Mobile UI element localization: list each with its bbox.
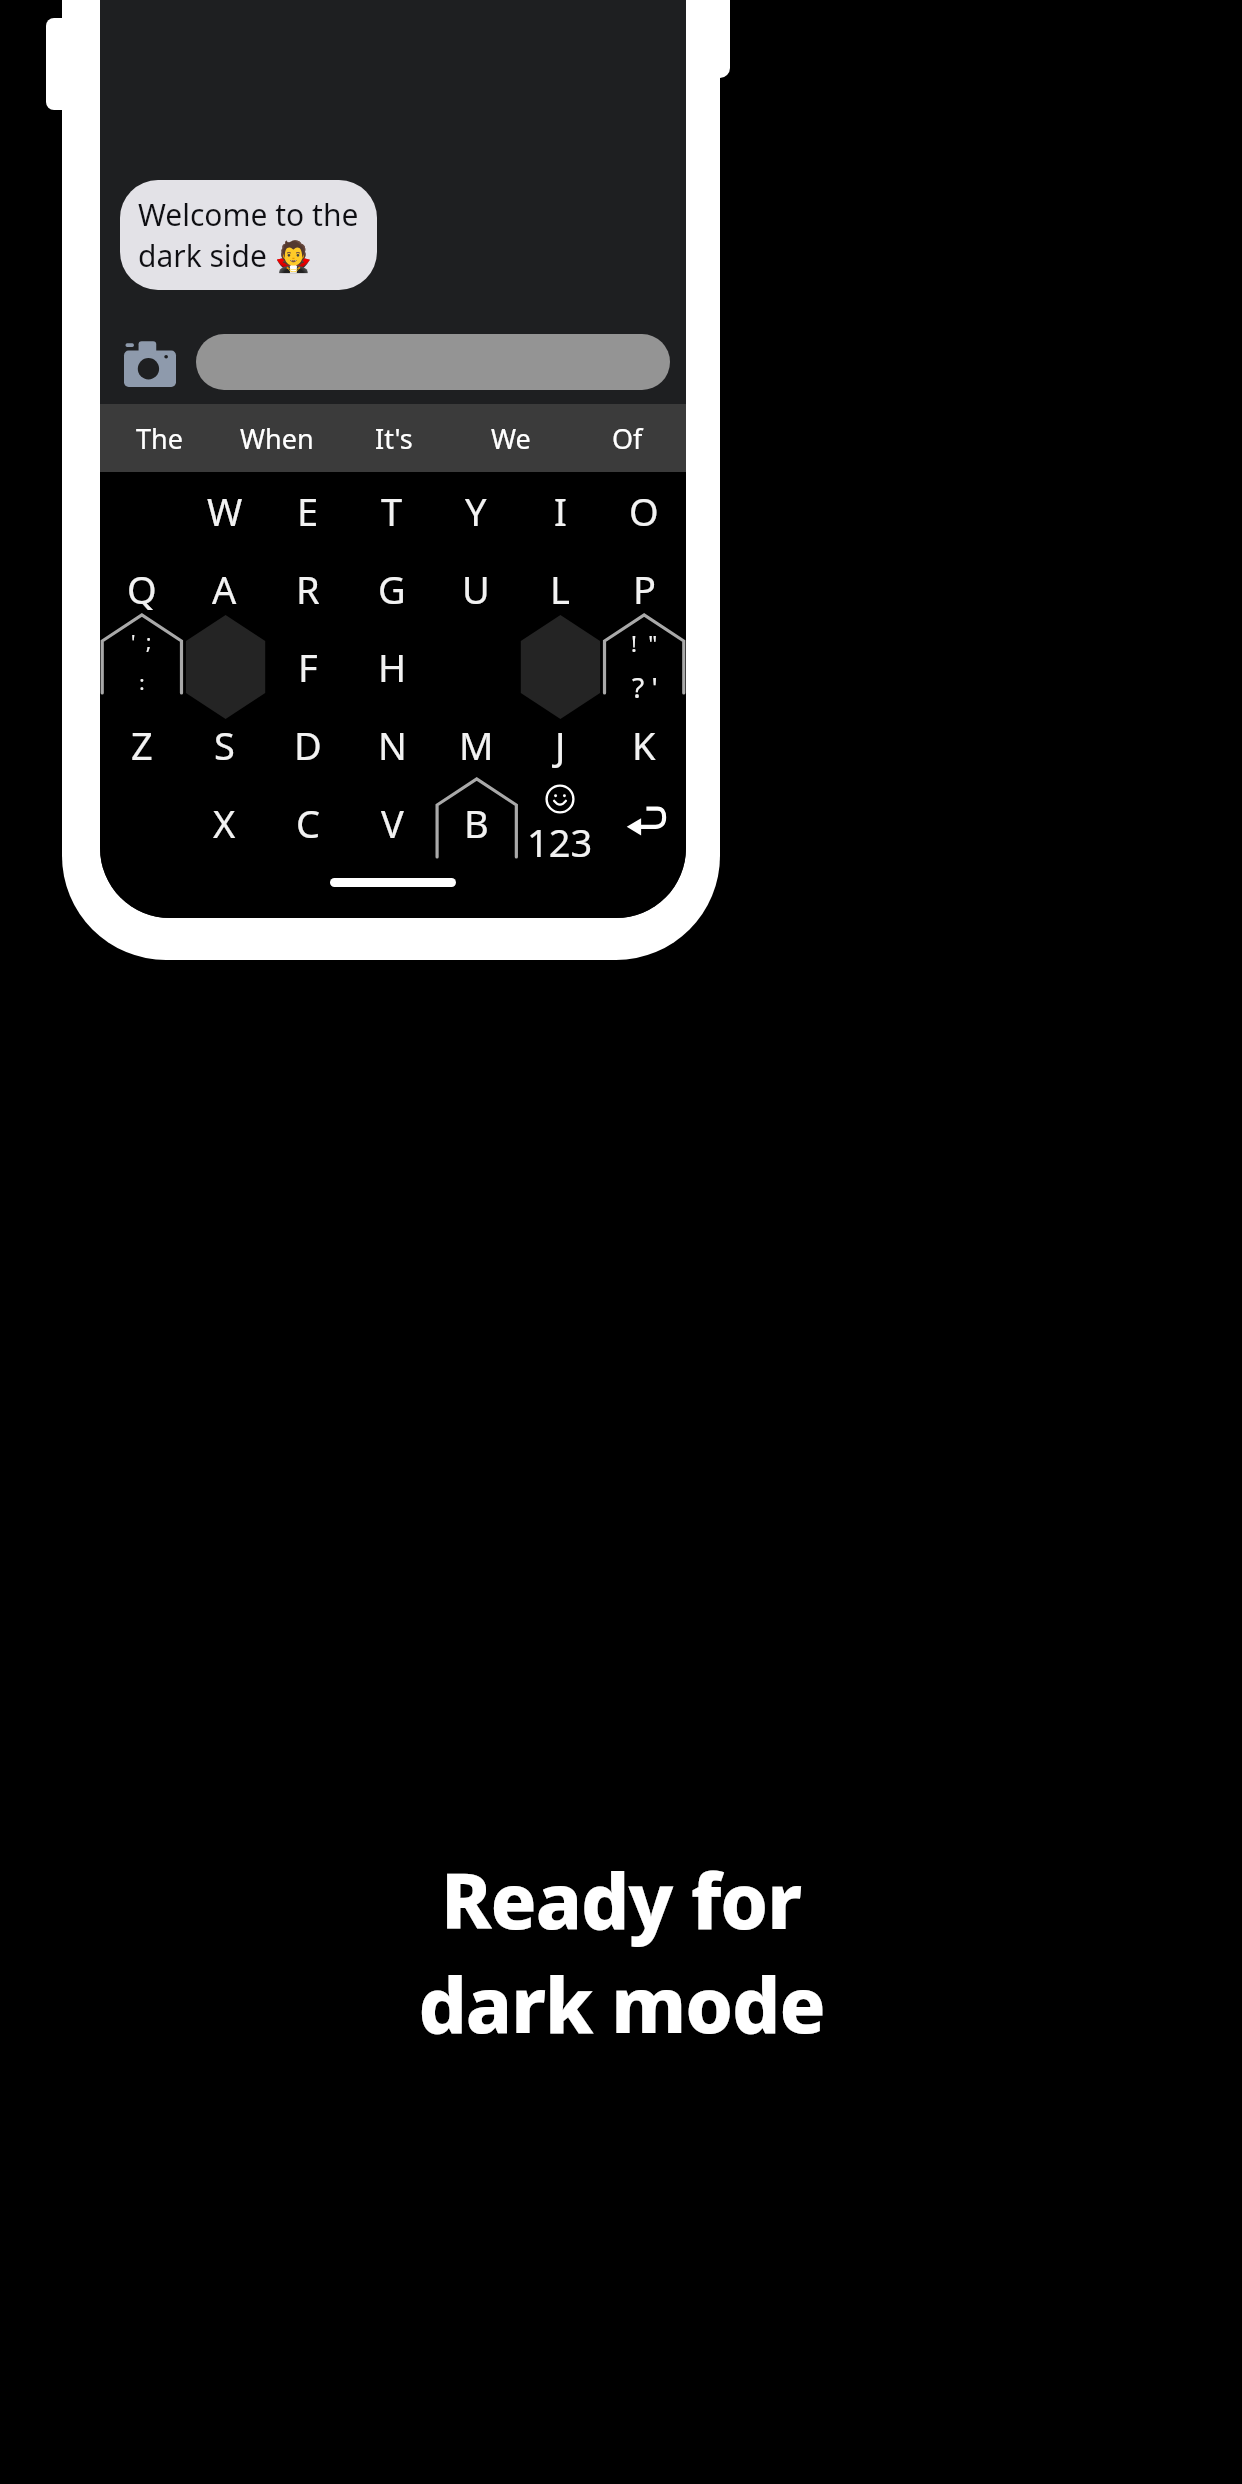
staticText: K [632, 719, 656, 771]
button[interactable]: G [350, 550, 434, 628]
staticText: D [294, 719, 322, 771]
button[interactable]: Punctuation [100, 628, 183, 706]
button[interactable]: We [452, 404, 569, 472]
staticText: 123 [527, 816, 593, 862]
button[interactable]: C [266, 784, 350, 862]
button[interactable]: M [434, 706, 518, 784]
button[interactable]: H [350, 628, 434, 706]
staticText: dark mode [418, 1952, 825, 2056]
button[interactable]: I [518, 472, 602, 550]
staticText: P [633, 563, 656, 615]
button[interactable]: O [602, 472, 686, 550]
staticText: Ready for [441, 1848, 801, 1952]
button[interactable]: B [434, 784, 518, 862]
button[interactable]: J [518, 706, 602, 784]
button[interactable]: Q [100, 550, 183, 628]
button[interactable]: F [266, 628, 350, 706]
staticText: ! " [631, 628, 658, 658]
staticText: I [554, 485, 567, 537]
staticText: J [555, 719, 566, 771]
button[interactable]: D [266, 706, 350, 784]
staticText: Y [465, 485, 487, 537]
button[interactable]: V [350, 784, 434, 862]
staticText: M [459, 719, 494, 771]
staticText: L [550, 563, 570, 615]
button[interactable]: L [518, 550, 602, 628]
button[interactable]: It's [335, 404, 452, 472]
staticText: F [298, 641, 318, 693]
staticText: The [136, 420, 183, 457]
staticText: E [297, 485, 319, 537]
button[interactable]: W [183, 472, 266, 550]
staticText: O [629, 485, 659, 537]
button[interactable]: K [602, 706, 686, 784]
button[interactable]: T [350, 472, 434, 550]
staticText: R [296, 563, 320, 615]
staticText: X [213, 797, 236, 849]
staticText: : . [139, 669, 145, 706]
button[interactable]: E [266, 472, 350, 550]
staticText: W [207, 485, 243, 537]
staticText: Welcome to the dark side 🧛 [138, 194, 359, 276]
staticText: It's [375, 420, 413, 457]
staticText: ? ' [632, 668, 658, 706]
staticText: Of [612, 420, 643, 457]
staticText: T [381, 485, 403, 537]
button[interactable]: Of [569, 404, 686, 472]
button[interactable]: When [218, 404, 335, 472]
staticText: S [214, 719, 235, 771]
button[interactable]: The [100, 404, 218, 472]
staticText: Q [127, 563, 157, 615]
button[interactable] [196, 334, 670, 390]
button[interactable]: Return [602, 784, 686, 862]
staticText: N [378, 719, 407, 771]
button[interactable]: P [602, 550, 686, 628]
button[interactable]: R [266, 550, 350, 628]
button[interactable]: S [183, 706, 266, 784]
button[interactable]: N [350, 706, 434, 784]
staticText: B [464, 797, 489, 849]
staticText: G [378, 563, 406, 615]
staticText: ' ; [131, 628, 152, 655]
button[interactable]: U [434, 550, 518, 628]
staticText: A [212, 563, 237, 615]
staticText: C [296, 797, 321, 849]
button[interactable]: Symbols [602, 628, 686, 706]
button[interactable]: Z [100, 706, 183, 784]
staticText: U [462, 563, 490, 615]
staticText: H [378, 641, 407, 693]
button[interactable]: A [183, 550, 266, 628]
staticText: Z [131, 719, 153, 771]
staticText: V [381, 797, 404, 849]
button[interactable]: Y [434, 472, 518, 550]
staticText: When [240, 420, 314, 457]
button[interactable]: X [183, 784, 266, 862]
button[interactable]: 123 [518, 784, 602, 862]
button[interactable]: Welcome to the dark side 🧛 [120, 180, 377, 290]
staticText: We [491, 420, 531, 457]
button[interactable]: Camera [118, 330, 182, 394]
